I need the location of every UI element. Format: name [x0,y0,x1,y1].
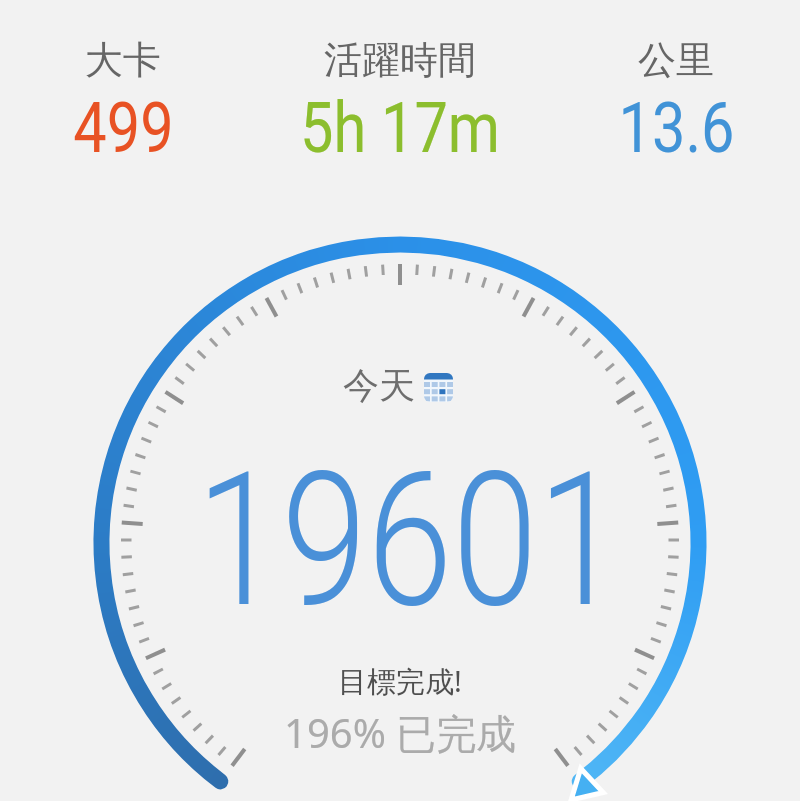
staticText: 19601 [196,432,624,649]
button[interactable]: 大卡 [0,36,263,84]
staticText: 13.6 [618,87,735,169]
staticText: 目標完成! [338,661,462,701]
staticText: 196% 已完成 [284,705,517,760]
button[interactable]: 公里 [536,36,800,84]
staticText: 活躍時間 [324,36,476,84]
staticText: 499 [73,87,174,169]
button[interactable]: 活躍時間 [260,36,540,84]
staticText: 大卡 [85,36,161,84]
staticText: 公里 [638,36,714,84]
button[interactable]: 今天 [343,363,453,408]
staticText: 5h 17m [300,87,500,169]
staticText: 今天 [343,363,415,408]
